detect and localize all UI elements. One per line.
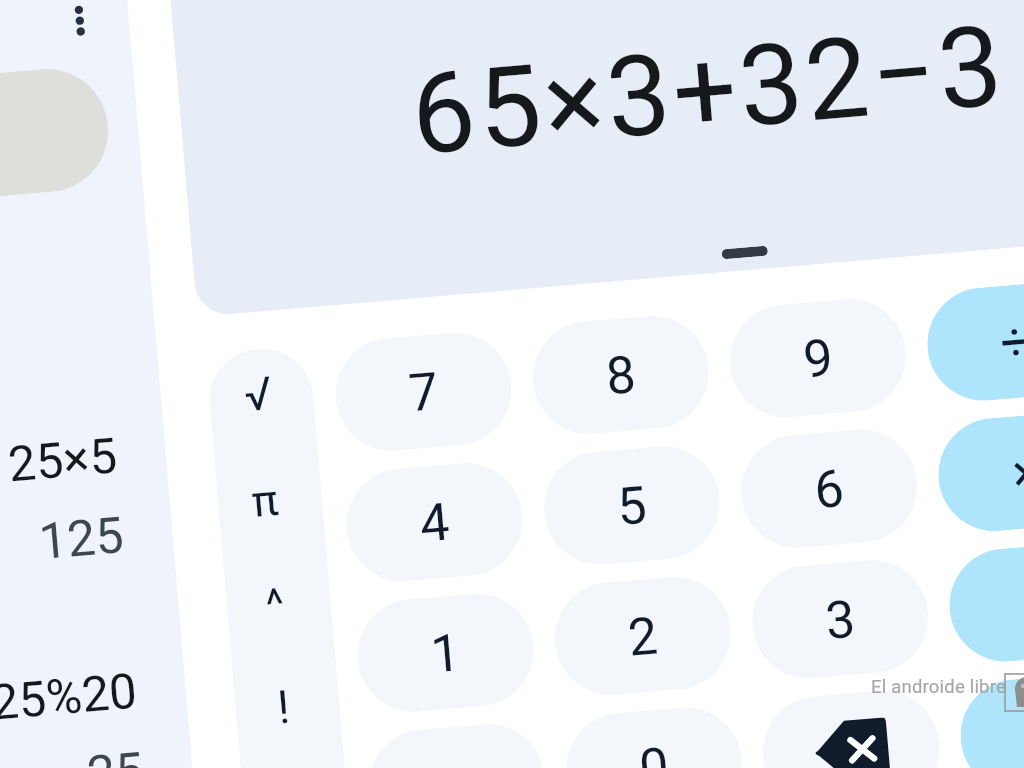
- button[interactable]: Subtract: [945, 539, 1024, 666]
- staticText: 6: [739, 452, 921, 546]
- staticText: ÷: [925, 305, 1024, 399]
- staticText: ^: [221, 574, 330, 649]
- button[interactable]: 3: [748, 555, 933, 683]
- staticText: 125: [0, 506, 128, 599]
- staticText: 4: [344, 485, 526, 580]
- staticText: !: [229, 676, 339, 753]
- button[interactable]: !: [228, 657, 341, 768]
- staticText: 0: [564, 730, 746, 768]
- staticText: 5: [542, 469, 724, 563]
- staticText: ×: [936, 435, 1024, 530]
- button[interactable]: 2: [550, 572, 735, 700]
- button[interactable]: 1: [353, 589, 538, 716]
- button[interactable]: 0: [561, 703, 746, 768]
- button[interactable]: 8: [528, 311, 713, 439]
- staticText: =: [958, 696, 1024, 768]
- button[interactable]: Multiply: [934, 408, 1024, 536]
- staticText: −: [947, 566, 1024, 660]
- button[interactable]: 6: [737, 425, 921, 552]
- staticText: √: [204, 363, 313, 440]
- button[interactable]: 9: [725, 294, 910, 422]
- staticText: .: [366, 746, 548, 768]
- staticText: π: [211, 471, 320, 545]
- button[interactable]: √: [202, 344, 315, 462]
- button[interactable]: More options: [51, 0, 108, 53]
- button[interactable]: [0, 64, 113, 202]
- staticText: 25: [0, 741, 148, 768]
- button[interactable]: Collapse display: [721, 246, 768, 259]
- staticText: 25×5: [0, 427, 121, 521]
- button[interactable]: Backspace: [759, 686, 944, 768]
- staticText: 25%20: [0, 663, 141, 756]
- staticText: 2: [553, 599, 735, 694]
- staticText: 3: [750, 582, 932, 677]
- staticText: 8: [530, 338, 713, 433]
- staticText: El androide libre: [871, 676, 1006, 698]
- button[interactable]: 5: [539, 442, 724, 569]
- staticText: 9: [728, 321, 910, 416]
- button[interactable]: [759, 686, 944, 768]
- staticText: 1: [355, 616, 537, 710]
- staticText: 7: [333, 355, 515, 449]
- staticText: 65×3+32−3: [406, 0, 1010, 181]
- button[interactable]: .: [364, 719, 549, 768]
- button[interactable]: π: [209, 450, 322, 568]
- button[interactable]: 7: [331, 328, 516, 455]
- button[interactable]: 4: [342, 458, 527, 586]
- button[interactable]: ^: [219, 553, 332, 672]
- button[interactable]: Divide: [923, 278, 1024, 405]
- button[interactable]: Equals: [956, 669, 1024, 768]
